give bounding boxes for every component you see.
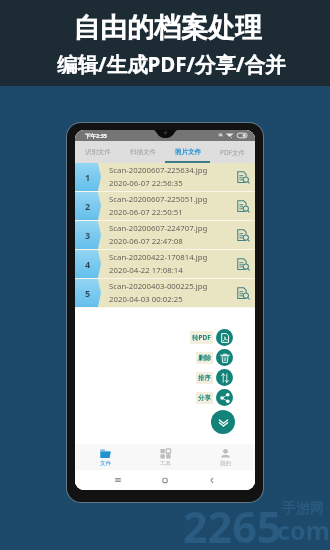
staticText: Scan-20200607-224707.jpg	[109, 223, 208, 234]
staticText: 1	[85, 171, 91, 183]
button[interactable]: Preview file	[231, 163, 255, 191]
staticText: 下午2:35	[85, 132, 107, 140]
button[interactable]: Preview file	[231, 250, 255, 278]
staticText: 2020-06-07 22:47:08	[109, 236, 183, 247]
staticText: 文件	[100, 460, 111, 467]
button[interactable]: Expand more	[211, 410, 235, 434]
staticText: Scan-20200607-225634.jpg	[109, 165, 208, 176]
button[interactable]: Preview file	[231, 192, 255, 220]
staticText: 我的	[220, 460, 231, 467]
staticText: 手游网	[282, 500, 324, 518]
button[interactable]: 5	[75, 279, 255, 307]
button[interactable]: 工具	[135, 444, 195, 470]
button[interactable]: Preview file	[231, 221, 255, 249]
staticText: 2	[85, 200, 91, 212]
staticText: Scan-20200422-170814.jpg	[109, 252, 208, 263]
button[interactable]: 1	[75, 163, 255, 191]
staticText: 2020-06-07 22:56:35	[109, 178, 183, 189]
staticText: 4	[85, 258, 91, 270]
button[interactable]: 删除	[196, 349, 233, 366]
button[interactable]: 排序	[196, 369, 233, 386]
staticText: PDF文件	[220, 148, 246, 157]
button[interactable]: 识别文件	[75, 141, 120, 163]
staticText: 删除	[198, 354, 211, 362]
button[interactable]: 文件	[75, 444, 135, 470]
staticText: 5	[85, 287, 91, 299]
staticText: Scan-20200607-225051.jpg	[109, 194, 208, 205]
button[interactable]: 分享	[196, 389, 233, 406]
staticText: 排序	[198, 374, 211, 382]
staticText: 识别文件	[85, 148, 111, 156]
staticText: 转PDF	[192, 333, 211, 342]
staticText: 分享	[198, 394, 211, 402]
button[interactable]: 3	[75, 221, 255, 249]
staticText: 工具	[160, 460, 171, 467]
staticText: 自由的档案处理	[73, 11, 262, 45]
staticText: 2020-06-07 22:50:51	[109, 207, 183, 218]
staticText: 编辑/生成PDF/分享/合并	[57, 50, 286, 78]
button[interactable]: 我的	[195, 444, 255, 470]
staticText: 照片文件	[175, 148, 201, 156]
button[interactable]: 扫描文件	[120, 141, 165, 163]
button[interactable]: PDF文件	[210, 141, 255, 163]
staticText: 3	[85, 229, 91, 241]
button[interactable]: Preview file	[231, 279, 255, 307]
button[interactable]: 2	[75, 192, 255, 220]
staticText: 2020-04-22 17:08:14	[109, 265, 183, 276]
staticText: Scan-20200403-000225.jpg	[109, 281, 208, 292]
staticText: 2265	[183, 497, 282, 550]
staticText: .com	[270, 513, 330, 547]
staticText: 2020-04-03 00:02:25	[109, 294, 183, 305]
button[interactable]: 转PDF	[190, 329, 233, 346]
button[interactable]: 4	[75, 250, 255, 278]
staticText: 扫描文件	[130, 148, 156, 156]
button[interactable]: 照片文件	[165, 141, 210, 163]
